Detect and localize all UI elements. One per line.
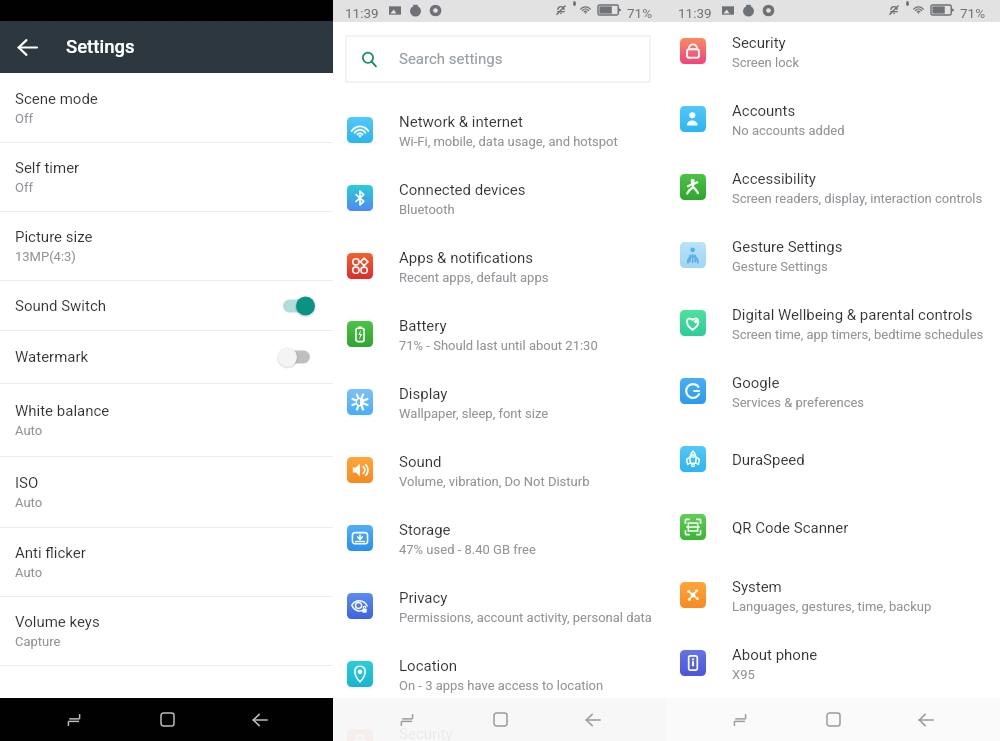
staticText: On - 3 apps have access to location <box>399 678 604 693</box>
button[interactable]: Apps & notifications <box>333 232 666 300</box>
staticText: Permissions, account activity, personal … <box>399 610 652 625</box>
button[interactable]: Digital Wellbeing & parental controls <box>666 289 1000 357</box>
button[interactable]: Security <box>333 708 666 741</box>
button[interactable]: Security <box>666 17 1000 85</box>
staticText: Auto <box>15 423 43 438</box>
staticText: Scene mode <box>15 90 98 108</box>
button[interactable]: Home <box>475 698 525 741</box>
staticText: ISO <box>15 474 39 492</box>
staticText: Settings <box>66 36 135 58</box>
button[interactable]: Volume keys <box>0 597 333 666</box>
button[interactable]: Scene mode <box>0 73 333 143</box>
staticText: Digital Wellbeing & parental controls <box>732 306 973 324</box>
staticText: Languages, gestures, time, backup <box>732 599 932 614</box>
staticText: About phone <box>732 646 818 664</box>
staticText: Off <box>15 111 33 126</box>
button[interactable]: White balance <box>0 384 333 457</box>
button[interactable]: Accessibility <box>666 153 1000 221</box>
staticText: Security <box>732 34 786 52</box>
button[interactable]: Recent apps <box>49 698 99 741</box>
button[interactable]: Search settings <box>346 36 650 82</box>
staticText: Accounts <box>732 102 796 120</box>
staticText: Screen lock <box>732 55 799 70</box>
staticText: Screen time, app timers, bedtime schedul… <box>732 327 984 342</box>
button[interactable]: Connected devices <box>333 164 666 232</box>
button[interactable]: Network & internet <box>333 96 666 164</box>
button[interactable]: Anti flicker <box>0 528 333 597</box>
staticText: Sound <box>399 453 442 471</box>
button[interactable]: Back <box>901 698 951 741</box>
staticText: Search settings <box>399 50 503 68</box>
button[interactable]: Sound <box>333 436 666 504</box>
button[interactable]: Privacy <box>333 572 666 640</box>
staticText: System <box>732 578 782 596</box>
button[interactable]: Home <box>808 698 858 741</box>
staticText: White balance <box>15 402 110 420</box>
button[interactable]: Back <box>11 31 43 63</box>
button[interactable]: Battery <box>333 300 666 368</box>
staticText: 11:39 <box>345 5 379 21</box>
staticText: 11:39 <box>678 5 712 21</box>
staticText: Screen readers, display, interaction con… <box>732 191 983 206</box>
staticText: Battery <box>399 317 447 335</box>
staticText: Bluetooth <box>399 202 455 217</box>
staticText: Volume keys <box>15 613 100 631</box>
button[interactable]: Sound Switch <box>0 281 333 331</box>
button[interactable]: Back <box>568 698 618 741</box>
staticText: 71% <box>627 5 653 21</box>
staticText: Location <box>399 657 458 675</box>
staticText: No accounts added <box>732 123 845 138</box>
button[interactable]: Location <box>333 640 666 708</box>
staticText: Connected devices <box>399 181 526 199</box>
button[interactable]: Google <box>666 357 1000 425</box>
staticText: Picture size <box>15 228 93 246</box>
staticText: Capture <box>15 634 61 649</box>
staticText: Gesture Settings <box>732 259 828 274</box>
staticText: Self timer <box>15 159 80 177</box>
staticText: Storage <box>399 521 451 539</box>
staticText: Recent apps, default apps <box>399 270 549 285</box>
button[interactable]: ISO <box>0 457 333 528</box>
staticText: Security <box>399 725 453 741</box>
staticText: Apps & notifications <box>399 249 533 267</box>
staticText: Off <box>15 180 33 195</box>
staticText: Anti flicker <box>15 544 86 562</box>
staticText: Services & preferences <box>732 395 865 410</box>
staticText: QR Code Scanner <box>732 519 849 537</box>
button[interactable]: Self timer <box>0 143 333 212</box>
staticText: DuraSpeed <box>732 451 805 469</box>
staticText: 47% used - 8.40 GB free <box>399 542 536 557</box>
button[interactable]: Back <box>235 698 285 741</box>
button[interactable]: Recent apps <box>715 698 765 741</box>
button[interactable]: Storage <box>333 504 666 572</box>
staticText: X95 <box>732 667 755 682</box>
button[interactable]: Display <box>333 368 666 436</box>
button[interactable]: Watermark <box>0 331 333 384</box>
staticText: Wallpaper, sleep, font size <box>399 406 549 421</box>
button[interactable]: QR Code Scanner <box>666 493 1000 561</box>
button[interactable]: Gesture Settings <box>666 221 1000 289</box>
staticText: Google <box>732 374 780 392</box>
staticText: Privacy <box>399 589 448 607</box>
staticText: Watermark <box>15 348 283 366</box>
staticText: 71% <box>960 5 986 21</box>
button[interactable]: Home <box>142 698 192 741</box>
staticText: Auto <box>15 495 43 510</box>
staticText: 13MP(4:3) <box>15 249 76 264</box>
button[interactable]: System <box>666 561 1000 629</box>
button[interactable]: Accounts <box>666 85 1000 153</box>
staticText: Network & internet <box>399 113 523 131</box>
button[interactable]: Picture size <box>0 212 333 281</box>
staticText: Accessibility <box>732 170 816 188</box>
staticText: Sound Switch <box>15 297 283 315</box>
staticText: Volume, vibration, Do Not Disturb <box>399 474 590 489</box>
staticText: Gesture Settings <box>732 238 843 256</box>
button[interactable]: DuraSpeed <box>666 425 1000 493</box>
staticText: Wi-Fi, mobile, data usage, and hotspot <box>399 134 618 149</box>
staticText: 71% - Should last until about 21:30 <box>399 338 598 353</box>
button[interactable]: About phone <box>666 629 1000 697</box>
staticText: Display <box>399 385 448 403</box>
button[interactable]: Recent apps <box>382 698 432 741</box>
staticText: Auto <box>15 565 43 580</box>
